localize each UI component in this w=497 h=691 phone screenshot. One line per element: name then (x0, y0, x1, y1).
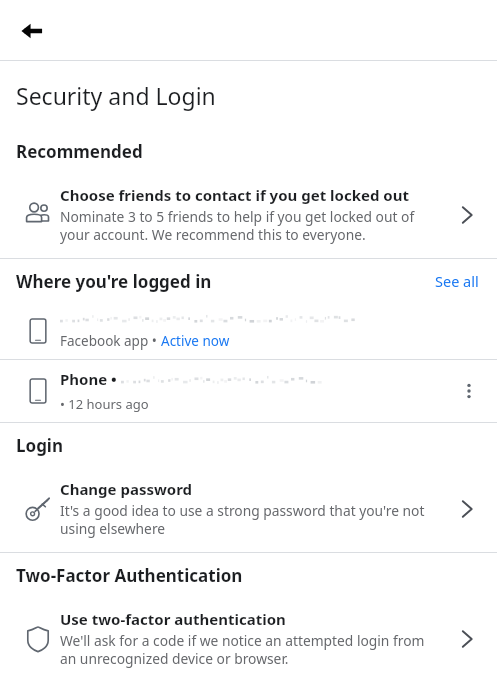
staticText: Recommended (16, 140, 143, 163)
staticText: Active now (161, 332, 230, 350)
staticText: Where you're logged in (16, 270, 433, 293)
staticText: We'll ask for a code if we notice an att… (60, 631, 425, 668)
staticText: Choose friends to contact if you get loc… (60, 185, 409, 205)
staticText: See all (435, 271, 479, 291)
staticText: Two-Factor Authentication (16, 564, 243, 587)
button[interactable]: More options (449, 371, 489, 411)
button[interactable]: Choose friends to contact if you get loc… (0, 173, 497, 258)
button[interactable]: Phone • (0, 360, 497, 422)
staticText: Login (16, 434, 64, 457)
staticText: Security and Login (16, 80, 216, 111)
staticText: Facebook app • (60, 332, 161, 350)
staticText: Change password (60, 479, 193, 499)
button[interactable]: Back (8, 7, 56, 55)
staticText: Nominate 3 to 5 friends to help if you g… (60, 207, 415, 244)
button[interactable]: Change password (0, 467, 497, 552)
staticText: Phone • (60, 369, 121, 389)
button[interactable]: Use two-factor authentication (0, 597, 497, 682)
staticText: • 12 hours ago (60, 395, 149, 413)
staticText: It's a good idea to use a strong passwor… (60, 501, 425, 538)
button[interactable]: Facebook app • (0, 303, 497, 359)
button[interactable]: See all (433, 267, 481, 295)
staticText: Use two-factor authentication (60, 609, 286, 629)
